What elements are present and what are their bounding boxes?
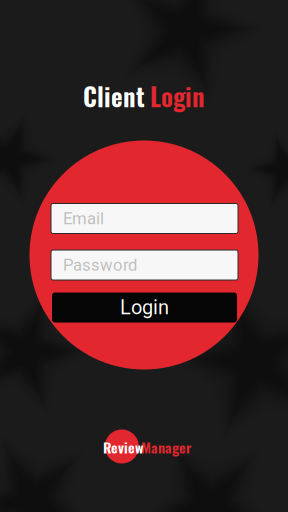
staticText: Review bbox=[103, 436, 143, 457]
staticText: Manager bbox=[141, 436, 191, 457]
button[interactable]: Password bbox=[51, 250, 238, 280]
staticText: Password bbox=[63, 255, 137, 275]
button[interactable]: Email bbox=[51, 203, 238, 233]
button[interactable]: Login bbox=[52, 292, 237, 322]
staticText: Client bbox=[83, 78, 145, 114]
staticText: Login bbox=[150, 78, 205, 114]
staticText: Login bbox=[120, 296, 169, 319]
staticText: Email bbox=[63, 209, 104, 228]
